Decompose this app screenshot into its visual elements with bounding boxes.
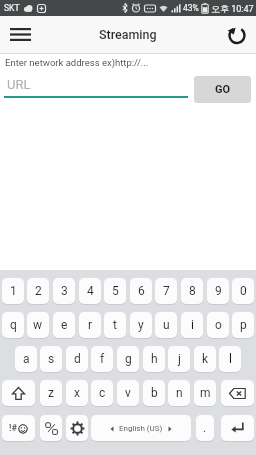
staticText: 43% [183,3,199,13]
staticText: 5 [112,284,119,298]
button[interactable]: d [66,346,88,372]
staticText: Enter network address ex)http://... [5,57,149,68]
staticText: 1 [10,284,17,298]
button[interactable]: m [194,380,216,406]
button[interactable]: 9 [207,278,229,304]
button[interactable]: p [232,312,254,338]
staticText: 4 [87,284,94,298]
staticText: b [151,386,158,400]
staticText: English (US) [119,424,163,433]
staticText: 3 [61,284,68,298]
staticText: x [74,386,80,400]
staticText: 6 [138,284,145,298]
staticText: w [33,318,43,332]
staticText: q [10,318,17,332]
staticText: i [191,318,194,332]
button[interactable]: 4 [79,278,101,304]
button[interactable]: English (US) [91,415,191,441]
button[interactable]: z [40,380,62,406]
button[interactable]: k [194,346,216,372]
button[interactable]: n [168,380,190,406]
staticText: u [163,318,170,332]
staticText: 7 [163,284,170,298]
button[interactable]: 8 [181,278,203,304]
staticText: k [202,352,209,366]
staticText: 오후 10:47 [211,3,254,14]
staticText: URL [7,77,31,92]
button[interactable] [225,23,249,47]
staticText: t [113,318,117,332]
button[interactable]: 3 [53,278,75,304]
staticText: f [100,352,105,366]
button[interactable]: r [79,312,101,338]
button[interactable]: 2 [27,278,49,304]
staticText: n [176,386,183,400]
button[interactable] [2,380,35,406]
button[interactable]: h [143,346,165,372]
button[interactable]: q [2,312,24,338]
button[interactable]: 5 [104,278,126,304]
button[interactable]: 1 [2,278,24,304]
staticText: Streaming [99,27,157,42]
staticText: . [203,421,207,435]
button[interactable] [4,21,36,48]
button[interactable]: v [117,380,139,406]
staticText: 8 [189,284,196,298]
staticText: 9 [215,284,222,298]
staticText: h [151,352,158,366]
button[interactable]: . [196,415,214,441]
staticText: s [48,352,55,366]
button[interactable]: s [40,346,62,372]
button[interactable]: b [143,380,165,406]
button[interactable]: !# [2,415,35,441]
button[interactable]: l [219,346,241,372]
button[interactable]: w [27,312,49,338]
staticText: r [88,318,93,332]
staticText: c [99,386,106,400]
staticText: e [61,318,68,332]
staticText: v [125,386,131,400]
button[interactable]: j [168,346,190,372]
staticText: l [229,352,232,366]
button[interactable]: x [66,380,88,406]
button[interactable]: g [117,346,139,372]
button[interactable]: t [104,312,126,338]
staticText: GO [215,83,231,96]
button[interactable]: 7 [155,278,177,304]
button[interactable]: 0 [232,278,254,304]
staticText: !# [9,423,17,434]
staticText: m [200,386,211,400]
staticText: z [48,386,54,400]
button[interactable]: o [207,312,229,338]
button[interactable] [221,415,254,441]
staticText: d [74,352,81,366]
staticText: 2 [35,284,42,298]
button[interactable]: a [15,346,37,372]
staticText: p [240,318,247,332]
staticText: o [215,318,222,332]
button[interactable]: c [91,380,113,406]
staticText: 0 [240,284,247,298]
staticText: g [125,352,132,366]
button[interactable] [221,380,254,406]
button[interactable]: f [91,346,113,372]
button[interactable]: u [155,312,177,338]
button[interactable]: GO [194,76,251,103]
button[interactable]: i [181,312,203,338]
button[interactable]: 6 [130,278,152,304]
button[interactable] [40,415,62,441]
staticText: j [178,352,181,366]
staticText: y [138,318,144,332]
staticText: SKT [4,3,20,13]
button[interactable]: e [53,312,75,338]
button[interactable] [66,415,88,441]
staticText: a [23,352,30,366]
button[interactable]: y [130,312,152,338]
